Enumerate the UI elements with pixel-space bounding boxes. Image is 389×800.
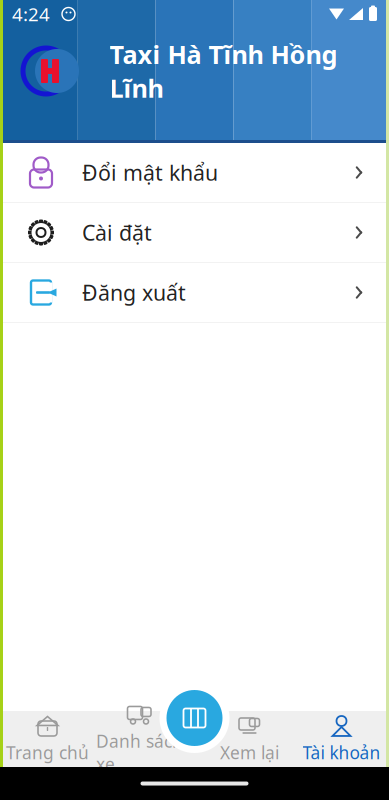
staticText: Xem lại (220, 741, 279, 764)
button[interactable]: Trang chủ (1, 712, 93, 766)
button[interactable]: Tài khoản (295, 712, 387, 766)
button[interactable]: Map (157, 681, 231, 755)
button[interactable]: Xem lại (203, 712, 295, 766)
staticText: Taxi Hà Tĩnh Hồng Lĩnh (109, 37, 337, 105)
staticText: Trang chủ (6, 741, 89, 764)
button[interactable]: Đổi mật khẩu (0, 143, 389, 203)
staticText: Cài đặt (82, 218, 152, 247)
button[interactable]: Đăng xuất (0, 263, 389, 323)
staticText: 4:24 (12, 2, 50, 26)
button[interactable]: Cài đặt (0, 203, 389, 263)
staticText: Đổi mật khẩu (82, 158, 218, 187)
staticText: Đăng xuất (82, 278, 186, 307)
button[interactable]: Danh sách xe (93, 712, 185, 766)
staticText: Tài khoản (302, 741, 380, 764)
staticText: Danh sách xe (96, 729, 183, 775)
